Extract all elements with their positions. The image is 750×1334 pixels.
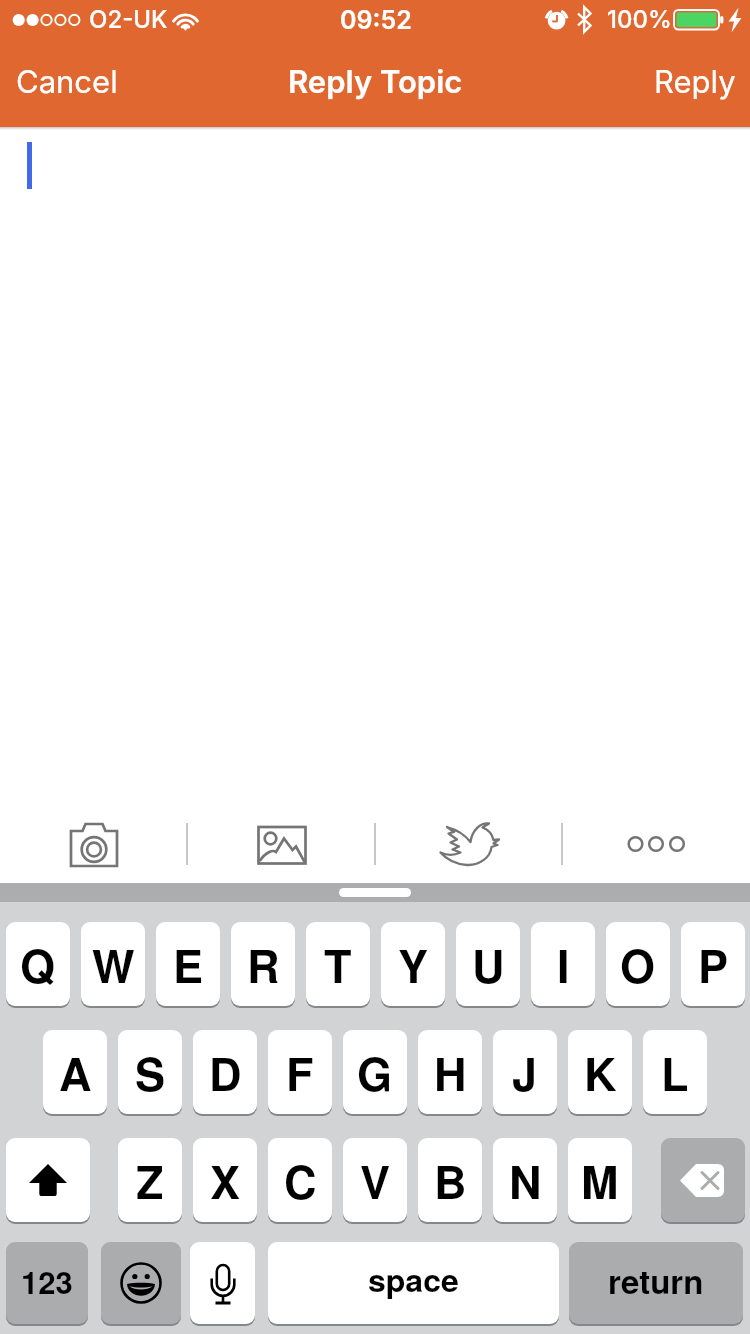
staticText: Z xyxy=(136,1148,164,1212)
button[interactable]: Twitter xyxy=(375,800,563,883)
button[interactable]: K xyxy=(568,1030,632,1114)
button[interactable]: J xyxy=(493,1030,557,1114)
staticText: E xyxy=(173,932,204,996)
button[interactable]: H xyxy=(418,1030,482,1114)
staticText: 09:52 xyxy=(340,5,412,35)
button[interactable]: I xyxy=(531,922,595,1006)
staticText: D xyxy=(209,1040,242,1104)
button[interactable]: Dictation xyxy=(190,1242,255,1324)
button[interactable]: Emoji xyxy=(101,1242,181,1324)
staticText: O xyxy=(620,932,656,996)
button[interactable]: F xyxy=(268,1030,332,1114)
button[interactable]: More options xyxy=(563,800,750,883)
button[interactable]: Q xyxy=(6,922,70,1006)
staticText: O2-UK xyxy=(89,5,168,34)
staticText: G xyxy=(357,1040,393,1104)
staticText: K xyxy=(584,1040,617,1104)
button[interactable]: Camera xyxy=(0,800,188,883)
button[interactable]: Reply xyxy=(638,44,750,120)
button[interactable]: N xyxy=(493,1138,557,1222)
button[interactable]: Z xyxy=(118,1138,182,1222)
button[interactable]: C xyxy=(268,1138,332,1222)
staticText: Reply xyxy=(654,63,736,101)
button[interactable]: X xyxy=(193,1138,257,1222)
staticText: P xyxy=(698,932,729,996)
staticText: I xyxy=(557,932,570,996)
button[interactable]: V xyxy=(343,1138,407,1222)
staticText: space xyxy=(368,1256,459,1302)
button[interactable]: O xyxy=(606,922,670,1006)
staticText: S xyxy=(135,1040,166,1104)
staticText: return xyxy=(608,1257,704,1304)
staticText: Reply Topic xyxy=(288,63,463,101)
staticText: M xyxy=(581,1148,619,1212)
button[interactable]: D xyxy=(193,1030,257,1114)
staticText: B xyxy=(434,1148,467,1212)
staticText: T xyxy=(324,932,352,996)
button[interactable]: E xyxy=(156,922,220,1006)
staticText: W xyxy=(92,932,135,996)
button[interactable]: B xyxy=(418,1138,482,1222)
button[interactable]: Y xyxy=(381,922,445,1006)
button[interactable]: space xyxy=(268,1242,559,1324)
staticText: V xyxy=(360,1148,391,1212)
staticText: C xyxy=(284,1148,317,1212)
staticText: Q xyxy=(20,932,56,996)
button[interactable]: U xyxy=(456,922,520,1006)
button[interactable]: G xyxy=(343,1030,407,1114)
button[interactable]: Photo library xyxy=(188,800,376,883)
staticText: U xyxy=(472,932,505,996)
staticText: R xyxy=(247,932,280,996)
button[interactable]: S xyxy=(118,1030,182,1114)
button[interactable]: R xyxy=(231,922,295,1006)
staticText: X xyxy=(210,1148,241,1212)
staticText: 100% xyxy=(607,5,672,34)
staticText: J xyxy=(512,1040,538,1104)
button[interactable]: 123 xyxy=(6,1242,88,1324)
button[interactable]: W xyxy=(81,922,145,1006)
staticText: H xyxy=(434,1040,467,1104)
button[interactable]: T xyxy=(306,922,370,1006)
button[interactable]: Backspace xyxy=(661,1138,745,1222)
staticText: Y xyxy=(398,932,429,996)
staticText: N xyxy=(509,1148,542,1212)
staticText: L xyxy=(661,1040,689,1104)
staticText: F xyxy=(286,1040,314,1104)
button[interactable]: M xyxy=(568,1138,632,1222)
button[interactable]: P xyxy=(681,922,745,1006)
button[interactable]: L xyxy=(643,1030,707,1114)
staticText: Cancel xyxy=(16,63,118,101)
button[interactable]: Cancel xyxy=(0,44,133,120)
button[interactable]: A xyxy=(43,1030,107,1114)
button[interactable]: return xyxy=(569,1242,743,1324)
staticText: 123 xyxy=(21,1259,73,1303)
staticText: A xyxy=(59,1040,92,1104)
button[interactable]: Shift xyxy=(6,1138,90,1222)
